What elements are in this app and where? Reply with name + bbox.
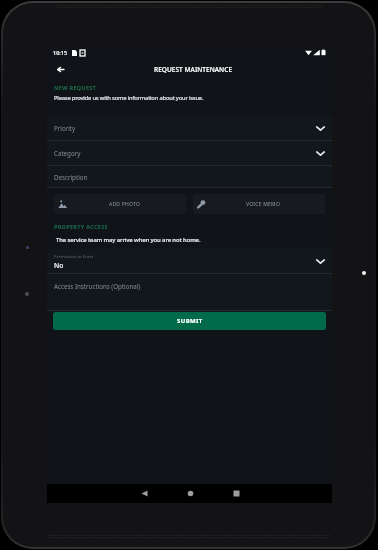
staticText: Please provide us with some information … bbox=[54, 94, 204, 102]
button[interactable]: Back bbox=[128, 484, 160, 503]
staticText: ADD PHOTO bbox=[109, 201, 141, 208]
button[interactable]: Category bbox=[47, 141, 332, 165]
staticText: NEW REQUEST bbox=[54, 84, 97, 91]
staticText: REQUEST MAINTENANCE bbox=[154, 65, 233, 74]
staticText: VOICE MEMO bbox=[246, 201, 281, 208]
staticText: The service team may arrive when you are… bbox=[56, 236, 201, 244]
staticText: No bbox=[54, 261, 64, 270]
button[interactable]: Access Instructions (Optional) bbox=[47, 274, 332, 310]
button[interactable]: Recents bbox=[220, 484, 252, 503]
staticText: Description bbox=[54, 173, 88, 181]
button[interactable]: Description bbox=[47, 166, 332, 187]
button[interactable]: SUBMIT bbox=[53, 312, 326, 330]
button[interactable]: Back bbox=[52, 61, 68, 77]
button[interactable]: VOICE MEMO bbox=[193, 194, 325, 214]
button[interactable]: Permission to Enter bbox=[47, 249, 332, 273]
staticText: Access Instructions (Optional) bbox=[54, 282, 141, 290]
staticText: Permission to Enter bbox=[54, 253, 94, 259]
button[interactable]: Priority bbox=[47, 116, 332, 140]
staticText: PROPERTY ACCESS bbox=[54, 223, 108, 230]
staticText: Category bbox=[54, 149, 81, 157]
staticText: SUBMIT bbox=[177, 317, 203, 325]
button[interactable]: ADD PHOTO bbox=[54, 194, 186, 214]
staticText: Priority bbox=[54, 124, 76, 132]
staticText: 10:15 bbox=[53, 49, 68, 56]
button[interactable]: Home bbox=[174, 484, 206, 503]
